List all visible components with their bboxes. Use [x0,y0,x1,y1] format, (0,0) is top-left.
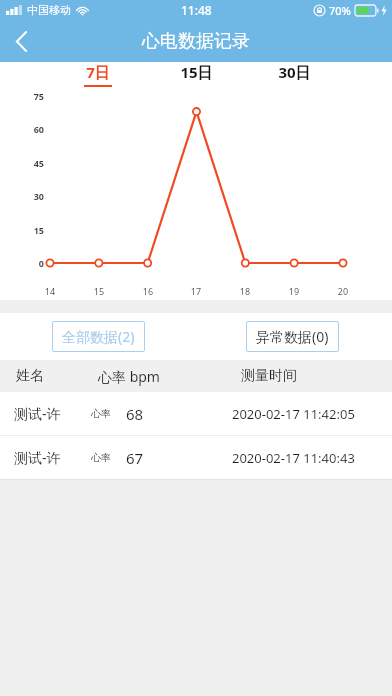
staticText: 19 [279,285,309,297]
staticText: 17 [181,285,211,297]
staticText: 测量时间 [241,367,297,385]
staticText: 16 [133,285,163,297]
staticText: 68 [126,404,144,424]
staticText: 45 [0,157,44,169]
staticText: 15 [84,285,114,297]
staticText: 30日 [278,62,311,82]
staticText: 全部数据(2) [62,327,135,346]
staticText: 67 [126,448,144,468]
button[interactable]: 异常数据(0) [246,321,339,352]
button[interactable]: 7日 [64,62,132,90]
staticText: 0 [0,257,44,269]
button[interactable]: 全部数据(2) [52,321,145,352]
staticText: 测试-许 [14,448,61,467]
staticText: 测试-许 [14,404,61,423]
button[interactable]: Back [0,20,42,62]
button[interactable]: 30日 [260,62,328,90]
staticText: 70% [329,3,351,18]
staticText: 20 [328,285,358,297]
staticText: 2020-02-17 11:40:43 [232,449,355,467]
staticText: 中国移动 [27,3,71,17]
staticText: 30 [0,190,44,202]
staticText: 7日 [86,62,110,82]
staticText: 14 [35,285,65,297]
button[interactable]: 测试-许 [0,392,392,435]
staticText: 心率 bpm [98,367,160,386]
staticText: 75 [0,90,44,102]
staticText: 心率 [91,451,111,464]
button[interactable]: 测试-许 [0,436,392,479]
staticText: 15 [0,224,44,236]
staticText: 2020-02-17 11:42:05 [232,405,355,423]
staticText: 15日 [180,62,213,82]
staticText: 心率 [91,407,111,420]
button[interactable]: 15日 [162,62,230,90]
staticText: 姓名 [16,367,44,385]
staticText: 18 [230,285,260,297]
staticText: 60 [0,123,44,135]
staticText: 心电数据记录 [142,30,250,53]
staticText: 11:48 [181,2,212,18]
staticText: 异常数据(0) [256,327,329,346]
